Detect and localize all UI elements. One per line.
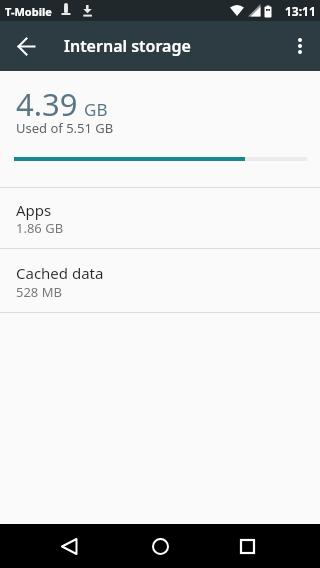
button[interactable] (49, 526, 89, 566)
staticText: Internal storage (64, 35, 191, 57)
staticText: GB (84, 98, 108, 121)
staticText: T-Mobile (5, 4, 52, 19)
button[interactable] (140, 526, 180, 566)
staticText: 13:11 (285, 3, 316, 19)
staticText: Used of 5.51 GB (16, 119, 114, 137)
button[interactable] (8, 28, 44, 64)
staticText: 4.39 (16, 83, 78, 125)
staticText: 1.86 GB (16, 219, 64, 237)
staticText: 528 MB (16, 283, 62, 301)
button[interactable] (227, 526, 267, 566)
button[interactable] (284, 30, 316, 62)
staticText: Apps (16, 200, 52, 220)
button[interactable]: Apps (0, 188, 320, 249)
staticText: Cached data (16, 263, 104, 283)
button[interactable]: Cached data (0, 249, 320, 313)
